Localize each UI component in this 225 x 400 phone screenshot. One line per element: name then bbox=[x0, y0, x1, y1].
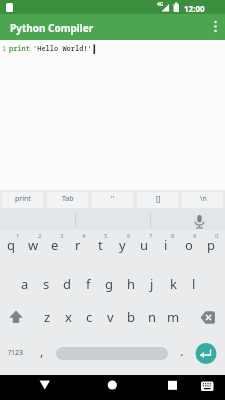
staticText: \n bbox=[200, 194, 207, 204]
staticText: 3 bbox=[60, 232, 64, 240]
staticText: t bbox=[98, 236, 103, 254]
staticText: g bbox=[105, 275, 113, 293]
staticText: j bbox=[150, 275, 154, 293]
staticText: . bbox=[180, 342, 184, 360]
staticText: , bbox=[40, 342, 44, 360]
staticText: '' bbox=[111, 194, 115, 204]
staticText: v bbox=[107, 308, 114, 326]
staticText: i bbox=[164, 236, 168, 254]
staticText: e bbox=[51, 236, 59, 254]
staticText: p bbox=[207, 236, 215, 254]
staticText: b bbox=[127, 308, 135, 326]
staticText: f bbox=[86, 275, 91, 293]
staticText: r bbox=[75, 236, 81, 254]
staticText: q bbox=[7, 236, 15, 254]
staticText: u bbox=[140, 236, 149, 254]
staticText: ?123 bbox=[8, 348, 24, 358]
staticText: o bbox=[185, 236, 193, 254]
staticText: y bbox=[119, 236, 126, 254]
staticText: n bbox=[148, 308, 157, 326]
staticText: print bbox=[9, 44, 30, 54]
staticText: z bbox=[44, 308, 51, 326]
staticText: l bbox=[192, 275, 196, 293]
staticText: m bbox=[167, 308, 180, 326]
staticText: x bbox=[65, 308, 72, 326]
staticText: k bbox=[170, 275, 177, 293]
staticText: 6 bbox=[127, 232, 131, 240]
staticText: w bbox=[28, 236, 39, 254]
staticText: h bbox=[127, 275, 136, 293]
staticText: Python Compiler bbox=[10, 21, 94, 35]
staticText: 8 bbox=[171, 232, 175, 240]
staticText: d bbox=[63, 275, 71, 293]
staticText: a bbox=[21, 275, 29, 293]
staticText: 4G bbox=[157, 1, 164, 8]
staticText: 12:00 bbox=[184, 3, 205, 14]
staticText: c bbox=[86, 308, 93, 326]
staticText: [] bbox=[156, 194, 161, 204]
staticText: 7 bbox=[149, 232, 153, 240]
staticText: 2 bbox=[38, 232, 42, 240]
staticText: 0 bbox=[215, 232, 219, 240]
staticText: s bbox=[43, 275, 50, 293]
staticText: 4 bbox=[82, 232, 86, 240]
staticText: 1 bbox=[16, 232, 20, 240]
staticText: 5 bbox=[104, 232, 108, 240]
staticText: 1 bbox=[2, 44, 7, 54]
staticText: Tab bbox=[62, 194, 74, 204]
staticText: 9 bbox=[193, 232, 197, 240]
staticText: print bbox=[15, 194, 31, 204]
staticText: 'Hello World!' bbox=[33, 44, 92, 54]
